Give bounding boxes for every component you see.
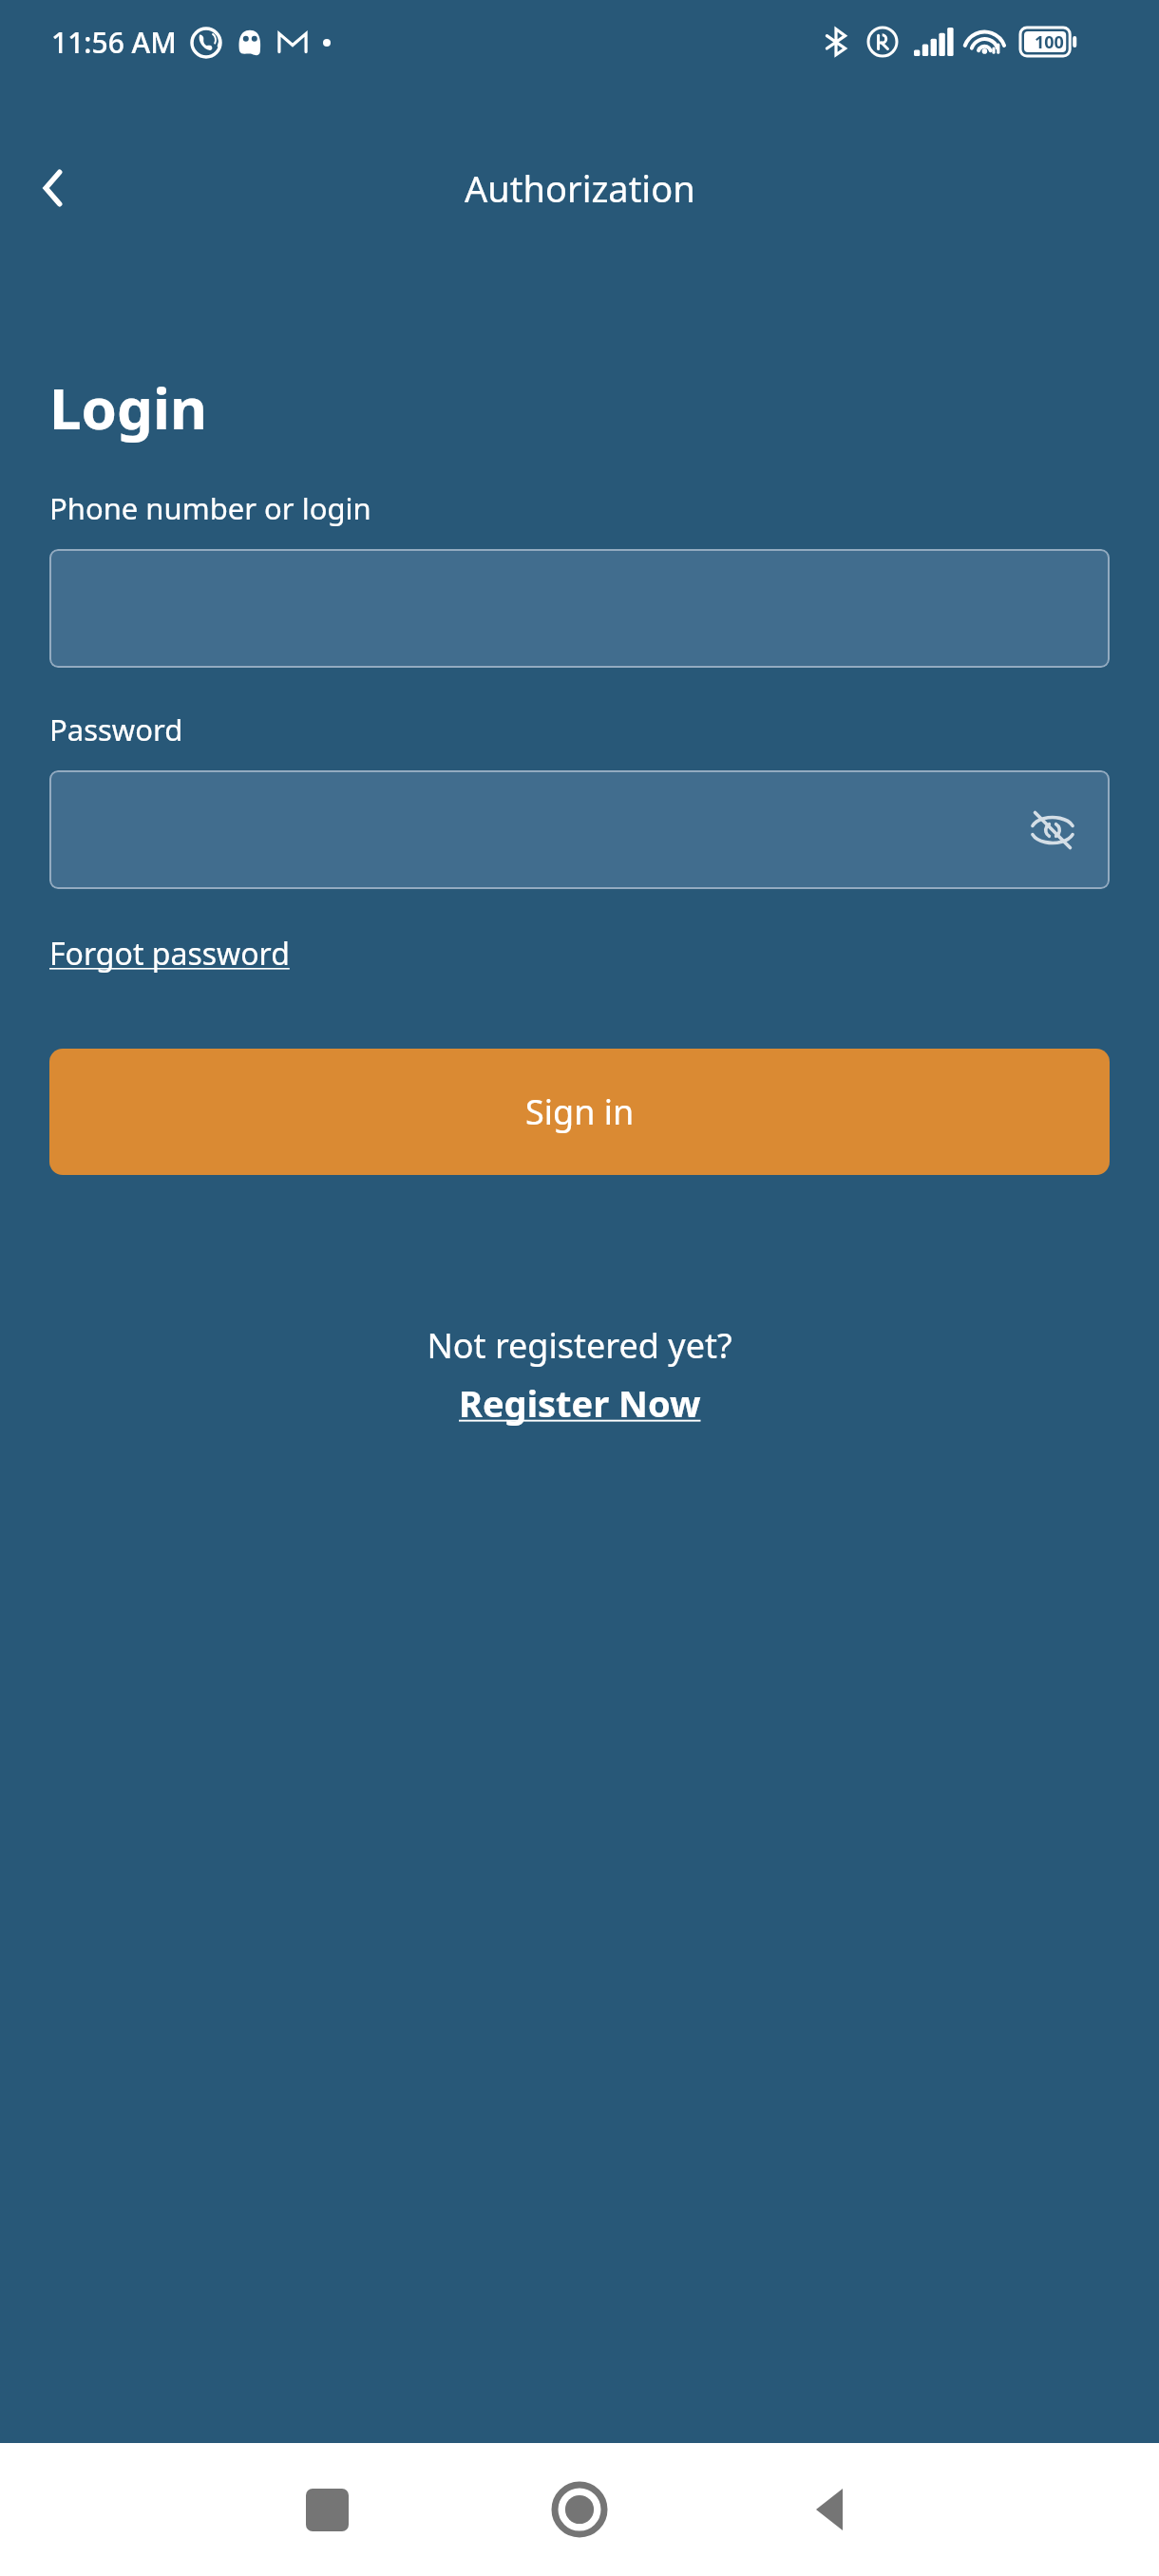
button[interactable]: Phone number or login field — [49, 549, 1110, 668]
button[interactable]: Sign in — [49, 1049, 1110, 1175]
button[interactable]: Password field — [49, 770, 1110, 889]
button[interactable]: Login — [49, 369, 207, 446]
staticText: 11:56 AM — [51, 23, 177, 62]
staticText: Phone number or login — [49, 488, 371, 528]
staticText: Authorization — [465, 163, 695, 213]
button[interactable]: Forgot password — [49, 933, 290, 975]
staticText: Sign in — [525, 1089, 635, 1135]
staticText: 100 — [1035, 30, 1064, 54]
button[interactable]: Register Now — [459, 1378, 701, 1428]
staticText: Not registered yet? — [427, 1322, 732, 1369]
button[interactable]: Home — [522, 2453, 636, 2567]
staticText: Password — [49, 710, 183, 749]
button[interactable]: Recent apps — [270, 2453, 384, 2567]
button[interactable]: Show password — [1022, 800, 1083, 861]
button[interactable]: Back — [21, 155, 87, 221]
staticText: Forgot password — [49, 933, 290, 975]
staticText: Register Now — [459, 1378, 701, 1428]
button[interactable]: Back — [775, 2453, 889, 2567]
